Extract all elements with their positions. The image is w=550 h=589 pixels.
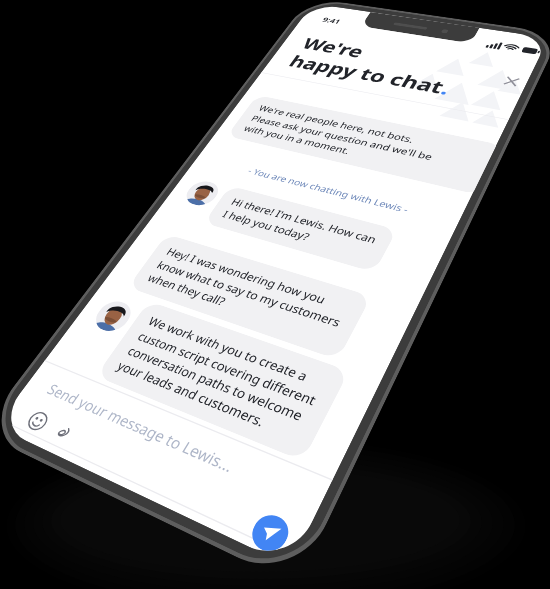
staticText: Hi there! I'm Lewis. How can I help you … bbox=[77, 318, 229, 350]
staticText: . bbox=[212, 96, 220, 131]
staticText: Hey! I was wondering how you know what t… bbox=[49, 394, 237, 442]
staticText: We work with you to create a custom scri… bbox=[77, 468, 250, 532]
button[interactable]: Hi there! I'm Lewis. How can I help you … bbox=[64, 308, 242, 360]
staticText: We're real people here, not bots. Please… bbox=[37, 188, 239, 236]
button[interactable]: We're real people here, not bots. Please… bbox=[24, 178, 290, 246]
staticText: happy to chat bbox=[34, 96, 212, 131]
button[interactable]: We work with you to create a custom scri… bbox=[64, 458, 263, 542]
staticText: - You are now chatting with Lewis - bbox=[72, 276, 243, 290]
button[interactable]: Hey! I was wondering how you know what t… bbox=[36, 384, 250, 452]
